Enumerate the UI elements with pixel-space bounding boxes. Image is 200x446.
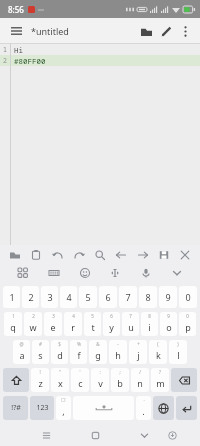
button[interactable]: Apps [14,264,32,282]
staticText: *untitled [31,25,69,37]
button[interactable]: ; [111,368,129,392]
button[interactable]: Back [112,246,130,264]
button[interactable]: More options [176,22,194,40]
button[interactable]: ) [169,340,187,364]
staticText: 6 [105,291,111,303]
staticText: x [58,377,63,389]
button[interactable]: % [70,340,87,364]
button[interactable]: Redo [70,246,88,264]
staticText: " [59,369,61,375]
button[interactable]: Edit [156,21,176,41]
button[interactable]: Recents [36,425,56,445]
button[interactable]: - [109,340,127,364]
button[interactable]: □ [56,396,71,420]
staticText: v [98,377,103,389]
staticText: f [77,349,81,361]
staticText: q [10,321,16,333]
staticText: y [109,321,114,333]
button[interactable]: Undo [49,246,67,264]
button[interactable]: Language [153,396,174,420]
button[interactable]: 8 [139,286,157,308]
staticText: a [19,349,25,361]
staticText: #80FF00 [14,56,46,66]
button[interactable]: 5 [79,286,97,308]
staticText: 3 [52,313,55,319]
staticText: p [185,321,191,333]
button[interactable]: 4 [64,312,82,336]
staticText: % [77,341,81,347]
staticText: k [156,349,161,361]
button[interactable]: 123 [30,396,54,420]
button[interactable]: · [136,396,151,420]
button[interactable]: 6 [99,286,117,308]
button[interactable]: 3 [41,286,58,308]
button[interactable]: Space [73,396,134,420]
button[interactable]: 4 [60,286,77,308]
button[interactable]: Shift [3,368,29,392]
staticText: . [142,405,145,417]
button[interactable]: 0 [179,286,197,308]
staticText: : [99,369,101,375]
staticText: j [137,349,140,361]
staticText: 2 [32,313,35,319]
button[interactable]: Keyboard layout [45,264,63,282]
button[interactable]: Text edit [106,264,124,282]
staticText: w [29,321,37,333]
button[interactable]: 1 [3,286,20,308]
button[interactable]: # [32,340,49,364]
button[interactable]: Paste [27,246,45,264]
button[interactable]: ( [149,340,167,364]
button[interactable]: !?# [3,396,28,420]
button[interactable]: Open file [136,21,156,41]
button[interactable]: 8 [141,312,158,336]
button[interactable]: Emoji [76,264,94,282]
button[interactable]: 2 [24,312,42,336]
staticText: 1 [3,45,7,54]
button[interactable]: / [131,368,149,392]
button[interactable]: @ [13,340,30,364]
button[interactable]: Back [134,425,154,445]
staticText: 8 [145,291,151,303]
staticText: ) [177,341,179,347]
button[interactable]: 7 [119,286,137,308]
button[interactable]: ! [31,368,49,392]
button[interactable]: 2 [22,286,39,308]
staticText: ? [159,369,161,375]
button[interactable]: : [91,368,109,392]
button[interactable]: Close [176,246,194,264]
button[interactable]: Enter [176,396,197,420]
staticText: r [71,321,75,333]
staticText: 8:56 [8,4,24,15]
staticText: 5 [91,313,94,319]
button[interactable]: Open [6,246,24,264]
button[interactable]: 6 [103,312,120,336]
button[interactable]: 7 [122,312,139,336]
button[interactable]: 9 [159,286,177,308]
button[interactable]: Forward [134,246,152,264]
button[interactable]: Voice input [137,264,155,282]
button[interactable]: " [51,368,69,392]
button[interactable]: Backspace [171,368,197,392]
button[interactable]: Menu [6,21,26,41]
button[interactable]: 9 [160,312,177,336]
button[interactable]: 3 [44,312,62,336]
button[interactable]: 1 [4,312,22,336]
staticText: 5 [85,291,91,303]
staticText: ! [39,369,41,375]
button[interactable]: Download [162,425,182,445]
staticText: l [177,349,180,361]
button[interactable]: ? [151,368,169,392]
button[interactable]: Hide keyboard [168,264,186,282]
staticText: 9 [167,313,170,319]
staticText: 4 [66,291,72,303]
button[interactable]: Home [85,425,105,445]
button[interactable]: Save [155,246,173,264]
staticText: $ [58,341,61,347]
button[interactable]: Search [91,246,109,264]
button[interactable]: 0 [179,312,196,336]
button[interactable]: 5 [84,312,101,336]
button[interactable]: + [129,340,147,364]
button[interactable]: & [89,340,107,364]
button[interactable]: ' [71,368,89,392]
button[interactable]: $ [51,340,68,364]
